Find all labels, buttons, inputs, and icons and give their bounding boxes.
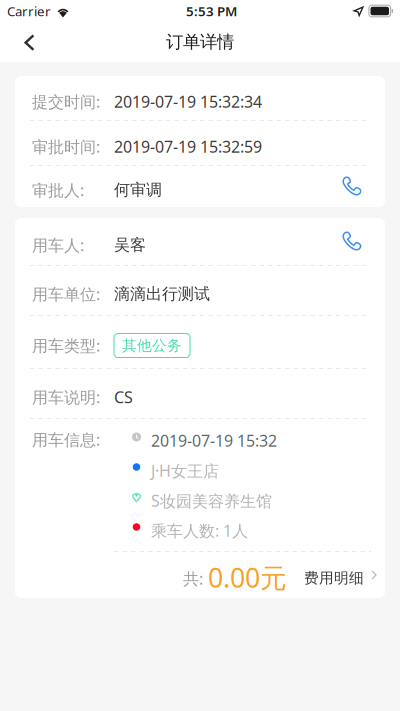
staticText: 2019-07-19 15:32 [151, 430, 277, 451]
staticText: 审批时间: [32, 136, 100, 157]
staticText: 何审调 [114, 180, 162, 200]
staticText: 用车说明: [32, 386, 100, 408]
staticText: 2019-07-19 15:32:59 [114, 136, 262, 157]
staticText: Carrier [7, 2, 51, 20]
button[interactable]: Back [0, 23, 51, 61]
staticText: 滴滴出行测试 [114, 284, 210, 304]
button[interactable]: Call passenger [334, 226, 371, 256]
staticText: 订单详情 [166, 31, 234, 53]
staticText: CS [114, 386, 133, 408]
staticText: 共: [183, 568, 203, 589]
staticText: 用车信息: [32, 429, 100, 450]
staticText: 吴客 [114, 235, 146, 255]
staticText: 5:53 PM [186, 2, 237, 20]
button[interactable]: 费用明细 [294, 556, 377, 594]
staticText: 2019-07-19 15:32:34 [114, 91, 262, 112]
staticText: 其他公务 [122, 336, 182, 354]
staticText: 乘车人数: 1人 [151, 520, 248, 541]
staticText: 用车类型: [32, 335, 100, 356]
staticText: S妆园美容养生馆 [151, 490, 272, 511]
staticText: 费用明细 [304, 569, 364, 587]
staticText: J·H女王店 [151, 460, 219, 481]
staticText: 0.00元 [208, 560, 287, 595]
button[interactable]: Call approver [334, 171, 371, 201]
staticText: 用车人: [32, 234, 84, 256]
staticText: 用车单位: [32, 283, 100, 305]
staticText: 审批人: [32, 179, 84, 201]
staticText: 提交时间: [32, 91, 100, 112]
